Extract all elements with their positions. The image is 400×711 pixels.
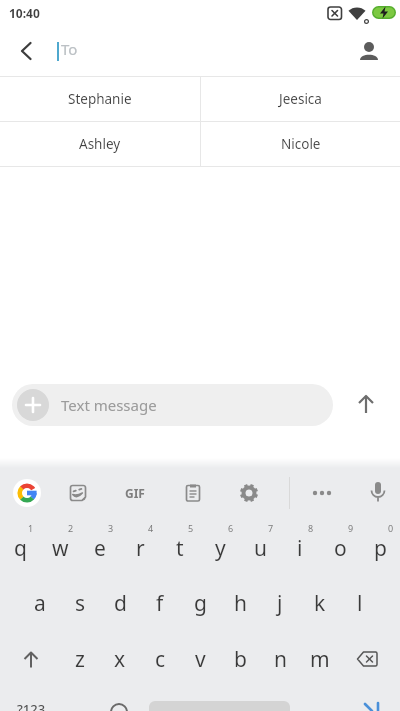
button[interactable]: t — [160, 528, 200, 568]
staticText: y — [215, 534, 226, 563]
staticText: Jeesica — [279, 90, 322, 108]
button[interactable] — [352, 34, 386, 68]
button[interactable]: c — [140, 639, 180, 679]
staticText: l — [357, 589, 363, 618]
button[interactable]: d — [100, 583, 140, 623]
staticText: f — [156, 589, 164, 618]
staticText: z — [75, 645, 85, 674]
button[interactable]: e — [80, 528, 120, 568]
staticText: n — [274, 645, 287, 674]
button[interactable] — [10, 34, 44, 68]
staticText: 0 — [388, 522, 394, 534]
button[interactable]: q — [0, 528, 40, 568]
button[interactable] — [11, 639, 51, 679]
staticText: t — [176, 534, 184, 563]
button[interactable]: l — [340, 583, 380, 623]
button[interactable] — [17, 389, 49, 421]
staticText: c — [155, 645, 166, 674]
staticText: r — [136, 534, 145, 563]
button[interactable]: u — [240, 528, 280, 568]
button[interactable]: w — [40, 528, 80, 568]
button[interactable]: g — [180, 583, 220, 623]
staticText: 10:40 — [9, 5, 40, 21]
staticText: Ashley — [79, 135, 121, 153]
staticText: k — [314, 589, 326, 618]
button[interactable]: x — [100, 639, 140, 679]
staticText: j — [277, 589, 283, 618]
button[interactable]: h — [220, 583, 260, 623]
staticText: u — [254, 534, 267, 563]
button[interactable]: Jeesica — [201, 77, 400, 121]
button[interactable]: k — [300, 583, 340, 623]
staticText: o — [334, 534, 347, 563]
staticText: 5 — [188, 522, 194, 534]
button[interactable]: o — [320, 528, 360, 568]
button[interactable]: r — [120, 528, 160, 568]
staticText: 4 — [148, 522, 154, 534]
staticText: g — [194, 589, 207, 618]
button[interactable]: Text message — [12, 384, 333, 426]
staticText: 8 — [308, 522, 314, 534]
staticText: i — [297, 534, 303, 563]
staticText: To — [61, 39, 78, 59]
button[interactable] — [13, 479, 41, 507]
button[interactable]: v — [180, 639, 220, 679]
button[interactable] — [364, 479, 392, 507]
staticText: 1 — [28, 522, 34, 534]
button[interactable]: i — [280, 528, 320, 568]
button[interactable] — [350, 388, 382, 420]
button[interactable]: ?123 — [8, 700, 54, 711]
button[interactable]: a — [20, 583, 60, 623]
button[interactable] — [235, 479, 263, 507]
button[interactable]: Stephanie — [0, 77, 200, 121]
staticText: 6 — [228, 522, 234, 534]
button[interactable]: z — [60, 639, 100, 679]
button[interactable]: Nicole — [201, 122, 400, 166]
button[interactable] — [64, 479, 92, 507]
staticText: p — [374, 534, 387, 563]
staticText: Nicole — [281, 135, 321, 153]
button[interactable] — [308, 479, 336, 507]
staticText: Stephanie — [68, 90, 132, 108]
staticText: ?123 — [17, 700, 46, 711]
staticText: q — [14, 534, 27, 563]
staticText: b — [234, 645, 247, 674]
button[interactable]: n — [260, 639, 300, 679]
staticText: w — [52, 534, 69, 563]
staticText: s — [75, 589, 86, 618]
staticText: GIF — [125, 485, 145, 501]
staticText: 9 — [348, 522, 354, 534]
staticText: m — [310, 645, 330, 674]
staticText: v — [195, 645, 206, 674]
button[interactable]: j — [260, 583, 300, 623]
staticText: Text message — [61, 395, 157, 415]
button[interactable]: m — [300, 639, 340, 679]
staticText: a — [34, 589, 46, 618]
staticText: h — [234, 589, 247, 618]
staticText: 2 — [68, 522, 74, 534]
staticText: 3 — [108, 522, 114, 534]
staticText: e — [94, 534, 106, 563]
button[interactable]: y — [200, 528, 240, 568]
staticText: x — [114, 645, 126, 674]
button[interactable]: b — [220, 639, 260, 679]
button[interactable] — [179, 479, 207, 507]
staticText: 7 — [268, 522, 274, 534]
button[interactable]: GIF — [118, 479, 152, 507]
staticText: d — [114, 589, 127, 618]
button[interactable]: s — [60, 583, 100, 623]
button[interactable] — [347, 639, 387, 679]
button[interactable]: p — [360, 528, 400, 568]
button[interactable]: Ashley — [0, 122, 200, 166]
button[interactable]: f — [140, 583, 180, 623]
